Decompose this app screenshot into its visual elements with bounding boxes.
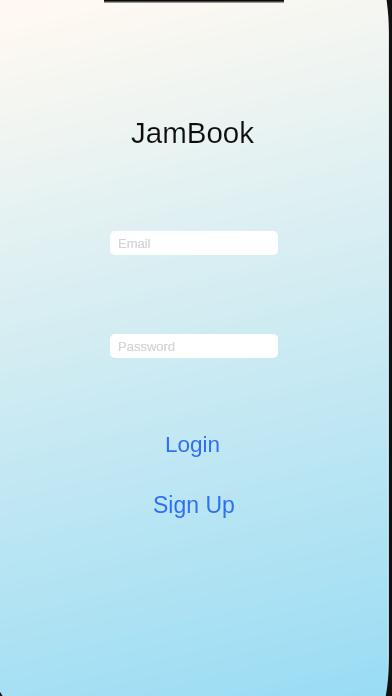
button[interactable]: Email — [110, 231, 278, 255]
button[interactable]: Sign Up — [145, 488, 243, 522]
button[interactable]: Login — [157, 428, 229, 461]
staticText: Email — [118, 236, 151, 251]
staticText: Login — [165, 432, 221, 457]
staticText: Sign Up — [153, 492, 235, 518]
staticText: Password — [118, 339, 176, 354]
button[interactable]: Password — [110, 334, 278, 358]
staticText: JamBook — [131, 116, 254, 149]
